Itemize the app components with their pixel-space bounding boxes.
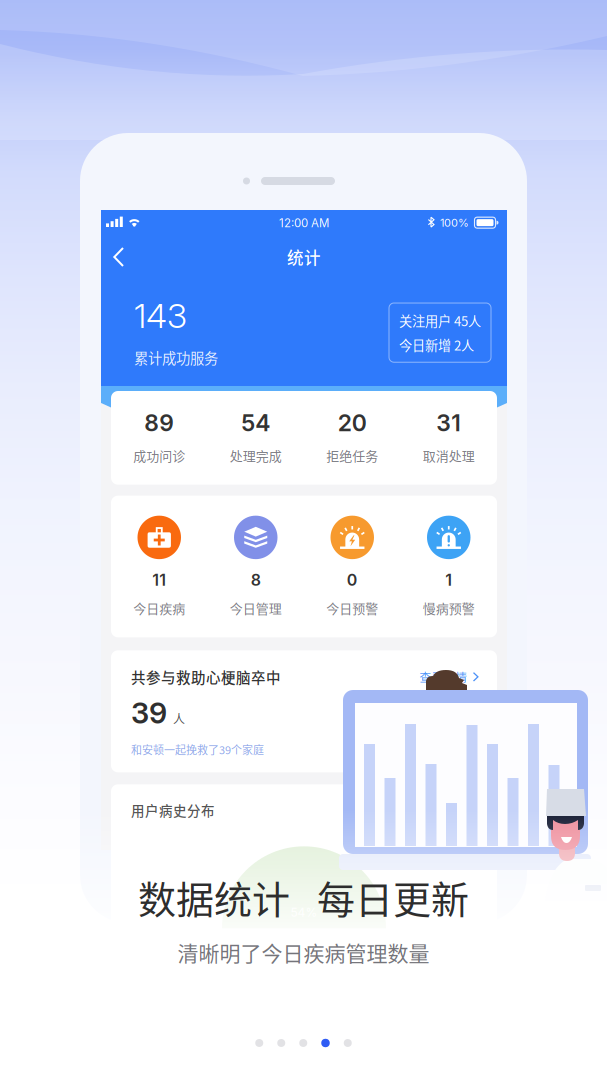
staticText: 20 <box>338 409 367 437</box>
staticText: 共参与救助心梗脑卒中 <box>131 666 281 687</box>
button[interactable]: 8 <box>207 516 304 617</box>
staticText: 取消处理 <box>423 446 475 465</box>
staticText: 0 <box>347 570 358 590</box>
staticText: 拒绝任务 <box>326 446 378 465</box>
staticText: 人 <box>173 710 185 727</box>
staticText: 今日疾病 <box>133 598 185 617</box>
staticText: 数据统计 每日更新 <box>138 869 469 924</box>
staticText: 8 <box>251 570 261 590</box>
staticText: 今日新增 2人 <box>399 335 474 354</box>
staticText: 今日管理 <box>230 598 282 617</box>
staticText: 慢病预警 <box>423 598 475 617</box>
staticText: 和安顿一起挽救了39个家庭 <box>131 741 264 757</box>
staticText: 清晰明了今日疾病管理数量 <box>177 937 429 967</box>
staticText: 今日预警 <box>326 598 378 617</box>
button[interactable]: 20 <box>304 409 400 465</box>
staticText: 143 <box>134 295 187 336</box>
staticText: 关注用户 45人 <box>399 311 481 330</box>
button[interactable]: Back <box>101 236 138 278</box>
button[interactable]: 54 <box>207 409 304 465</box>
staticText: 统计 <box>287 245 321 269</box>
staticText: 成功问诊 <box>133 446 185 465</box>
staticText: 54% <box>290 905 317 920</box>
button[interactable]: 89 <box>111 409 207 465</box>
staticText: 89 <box>144 409 174 437</box>
staticText: 用户病史分布 <box>131 800 215 820</box>
staticText: 54 <box>241 409 270 437</box>
staticText: 1 <box>445 570 452 590</box>
staticText: 12:00 AM <box>279 216 329 230</box>
button[interactable]: 11 <box>111 516 207 617</box>
button[interactable]: 31 <box>400 409 497 465</box>
staticText: 39 <box>131 695 167 730</box>
button[interactable]: 查看详情 <box>419 668 479 685</box>
staticText: 累计成功服务 <box>134 347 218 368</box>
staticText: 11 <box>152 570 166 590</box>
staticText: 查看详情 <box>419 668 467 685</box>
staticText: 31 <box>436 409 461 437</box>
button[interactable]: 1 <box>400 516 497 617</box>
button[interactable]: 0 <box>304 516 400 617</box>
staticText: 处理完成 <box>230 446 282 465</box>
staticText: 100% <box>440 216 469 229</box>
